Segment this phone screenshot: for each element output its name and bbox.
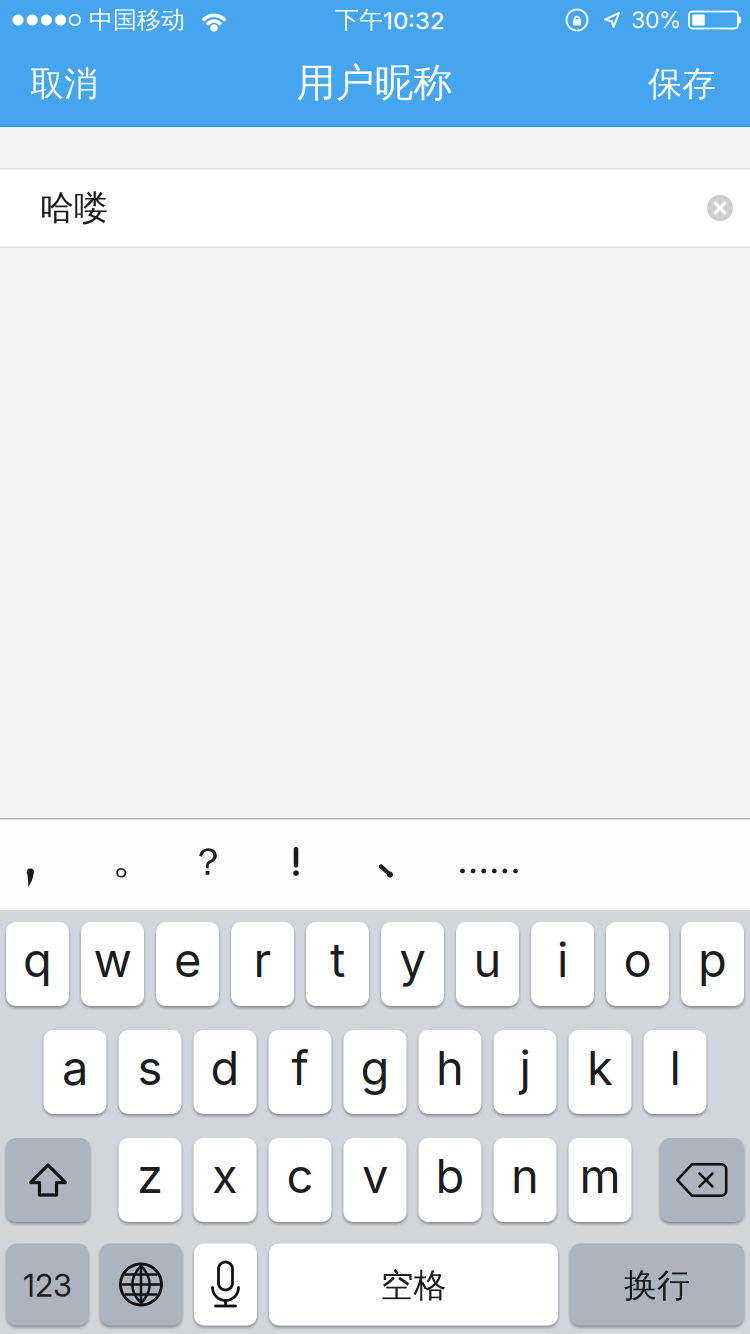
- staticText: n: [511, 1148, 539, 1204]
- staticText: t: [330, 932, 345, 988]
- button[interactable]: d: [193, 1030, 256, 1114]
- button[interactable]: b: [418, 1138, 481, 1222]
- staticText: 用户昵称: [296, 58, 452, 107]
- staticText: 。: [112, 830, 156, 886]
- button[interactable]: 下一个键盘: [100, 1243, 182, 1325]
- button[interactable]: f: [268, 1030, 331, 1114]
- button[interactable]: h: [418, 1030, 481, 1114]
- button[interactable]: u: [456, 922, 519, 1006]
- staticText: d: [210, 1040, 239, 1096]
- staticText: q: [23, 932, 52, 988]
- button[interactable]: 换行: [570, 1243, 744, 1325]
- button[interactable]: o: [606, 922, 669, 1006]
- button[interactable]: Delete: [660, 1138, 744, 1222]
- button[interactable]: s: [118, 1030, 181, 1114]
- staticText: h: [436, 1040, 464, 1096]
- button[interactable]: ？: [189, 838, 227, 886]
- staticText: i: [557, 932, 568, 988]
- staticText: w: [93, 932, 131, 988]
- staticText: 保存: [648, 63, 716, 105]
- button[interactable]: z: [118, 1138, 181, 1222]
- staticText: 空格: [380, 1265, 446, 1306]
- button[interactable]: y: [381, 922, 444, 1006]
- staticText: 取消: [30, 63, 98, 105]
- staticText: x: [212, 1148, 238, 1204]
- button[interactable]: Shift: [6, 1138, 90, 1222]
- button[interactable]: e: [156, 922, 219, 1006]
- button[interactable]: ，: [26, 868, 35, 888]
- staticText: f: [291, 1040, 308, 1096]
- button[interactable]: ……: [459, 867, 518, 875]
- staticText: m: [579, 1148, 620, 1204]
- button[interactable]: x: [193, 1138, 256, 1222]
- button[interactable]: 。: [112, 830, 156, 886]
- button[interactable]: ！: [289, 846, 302, 876]
- staticText: r: [253, 932, 271, 988]
- staticText: y: [399, 932, 425, 988]
- staticText: p: [698, 932, 727, 988]
- button[interactable]: k: [568, 1030, 631, 1114]
- button[interactable]: v: [343, 1138, 406, 1222]
- button[interactable]: p: [681, 922, 744, 1006]
- staticText: 换行: [624, 1265, 690, 1306]
- button[interactable]: c: [268, 1138, 331, 1222]
- staticText: c: [286, 1148, 313, 1204]
- button[interactable]: 清除文本: [707, 195, 733, 221]
- staticText: 哈喽: [40, 187, 108, 229]
- staticText: 123: [23, 1267, 72, 1304]
- button[interactable]: i: [531, 922, 594, 1006]
- button[interactable]: 听写: [194, 1243, 257, 1325]
- button[interactable]: l: [643, 1030, 706, 1114]
- staticText: 30%: [631, 6, 681, 34]
- staticText: 中国移动: [89, 5, 185, 35]
- staticText: u: [473, 932, 501, 988]
- staticText: e: [174, 932, 201, 988]
- staticText: 下午10:32: [335, 5, 445, 35]
- button[interactable]: 123: [6, 1243, 88, 1325]
- button[interactable]: 、: [378, 863, 395, 880]
- button[interactable]: m: [568, 1138, 631, 1222]
- button[interactable]: n: [493, 1138, 556, 1222]
- staticText: k: [587, 1040, 613, 1096]
- staticText: g: [360, 1040, 389, 1096]
- staticText: l: [669, 1040, 680, 1096]
- staticText: ？: [189, 838, 227, 886]
- staticText: s: [137, 1040, 162, 1096]
- staticText: b: [435, 1148, 464, 1204]
- button[interactable]: a: [43, 1030, 106, 1114]
- staticText: a: [62, 1040, 88, 1096]
- button[interactable]: g: [343, 1030, 406, 1114]
- staticText: z: [137, 1148, 163, 1204]
- button[interactable]: 空格: [269, 1243, 558, 1325]
- staticText: v: [362, 1148, 388, 1204]
- staticText: o: [623, 932, 651, 988]
- button[interactable]: r: [231, 922, 294, 1006]
- button[interactable]: 保存: [648, 63, 716, 105]
- button[interactable]: t: [306, 922, 369, 1006]
- button[interactable]: 取消: [30, 63, 98, 105]
- button[interactable]: w: [81, 922, 144, 1006]
- button[interactable]: j: [493, 1030, 556, 1114]
- staticText: j: [519, 1040, 530, 1096]
- button[interactable]: q: [6, 922, 69, 1006]
